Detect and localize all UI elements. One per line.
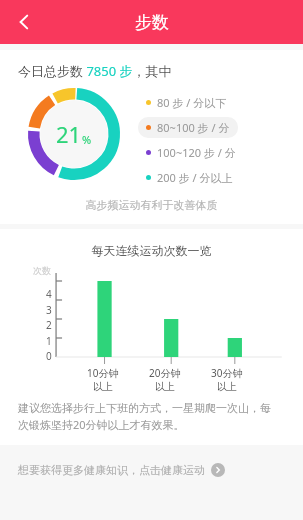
staticText: 今日总步数 7850 步，其中 [18, 62, 172, 80]
button[interactable]: 80~100 步 / 分 [138, 117, 238, 138]
button[interactable]: 100~120 步 / 分 [138, 142, 244, 163]
button[interactable]: 80 步 / 分以下 [138, 92, 235, 113]
staticText: 2 [46, 318, 52, 332]
staticText: 次数 [33, 265, 51, 276]
staticText: 3 [46, 303, 52, 317]
staticText: 高步频运动有利于改善体质 [0, 198, 303, 212]
staticText: 以上 [155, 380, 175, 393]
button[interactable]: Back [4, 2, 44, 42]
staticText: 20分钟 [149, 366, 181, 380]
staticText: 以上 [217, 380, 237, 393]
staticText: 每天连续运动次数一览 [0, 243, 303, 258]
button[interactable]: 想要获得更多健康知识，点击健康运动 [0, 455, 303, 485]
staticText: 步数 [135, 12, 169, 33]
staticText: 10分钟 [87, 366, 119, 380]
staticText: 4 [46, 287, 52, 301]
staticText: 200 步 / 分以上 [157, 170, 233, 185]
staticText: 建议您选择步行上下班的方式，一星期爬一次山，每 次锻炼坚持20分钟以上才有效果。 [18, 401, 285, 433]
staticText: 0 [46, 349, 52, 363]
staticText: 1 [46, 334, 52, 348]
staticText: 80 步 / 分以下 [157, 95, 227, 110]
staticText: % [82, 132, 92, 147]
staticText: 100~120 步 / 分 [157, 145, 236, 160]
staticText: 30分钟 [211, 366, 243, 380]
staticText: 21 [56, 119, 82, 149]
button[interactable]: 200 步 / 分以上 [138, 167, 241, 188]
staticText: 80~100 步 / 分 [157, 120, 230, 135]
staticText: 想要获得更多健康知识，点击健康运动 [18, 463, 205, 477]
staticText: 以上 [93, 380, 113, 393]
